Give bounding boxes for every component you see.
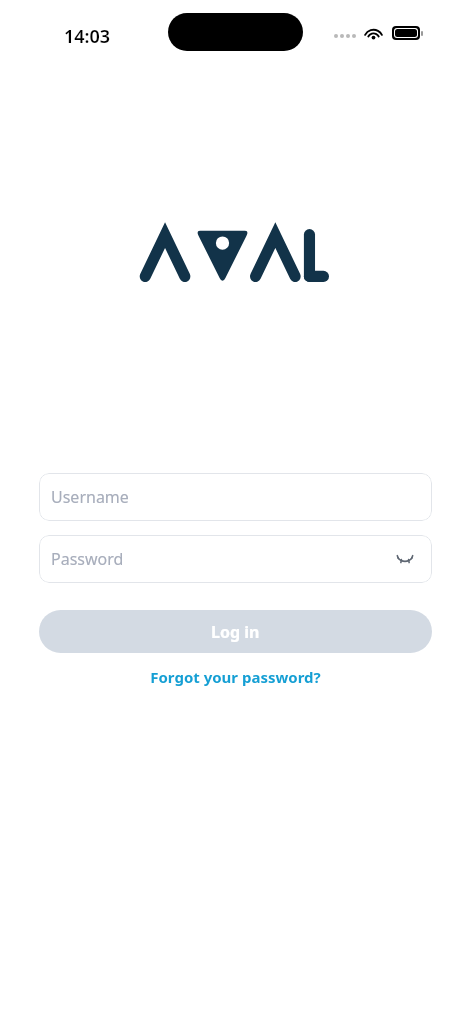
button[interactable]: Forgot your password?: [39, 667, 432, 687]
button[interactable]: Log in: [39, 610, 432, 653]
staticText: 14:03: [64, 24, 111, 49]
button[interactable]: Username: [39, 473, 432, 521]
button[interactable]: Password: [39, 535, 432, 583]
staticText: Password: [51, 548, 124, 570]
staticText: Log in: [211, 621, 260, 643]
button[interactable]: Show password: [392, 546, 418, 572]
staticText: Forgot your password?: [150, 667, 321, 687]
staticText: Username: [51, 486, 129, 508]
